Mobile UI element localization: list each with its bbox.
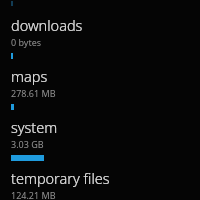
staticText: downloads	[11, 15, 83, 35]
button[interactable]: temporary files	[0, 168, 200, 200]
button[interactable]: downloads	[0, 15, 200, 59]
staticText: maps	[11, 66, 48, 86]
button[interactable]: maps	[0, 66, 200, 110]
staticText: 3.03 GB	[11, 138, 44, 150]
staticText: temporary files	[11, 168, 110, 188]
staticText: 124.21 MB	[11, 189, 56, 200]
staticText: 0 bytes	[11, 36, 42, 48]
button[interactable]: system	[0, 117, 200, 161]
staticText: 278.61 MB	[11, 87, 56, 99]
staticText: system	[11, 117, 58, 137]
